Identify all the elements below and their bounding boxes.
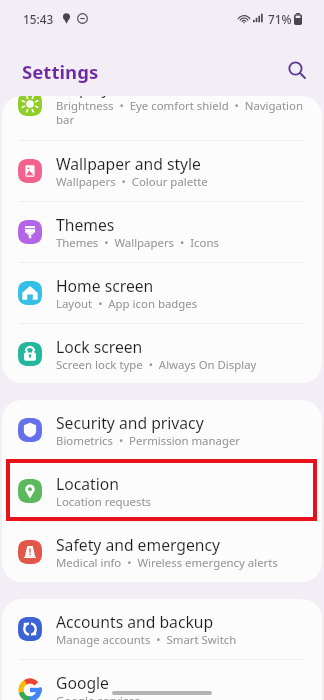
- staticText: Manage accounts • Smart Switch: [56, 632, 237, 648]
- staticText: Google: [56, 672, 109, 693]
- staticText: Display: [56, 96, 110, 98]
- staticText: Layout • App icon badges: [56, 296, 198, 312]
- staticText: Location requests: [56, 494, 152, 510]
- staticText: Lock screen: [56, 336, 143, 357]
- button[interactable]: Lock screen: [2, 324, 322, 383]
- staticText: Screen lock type • Always On Display: [56, 357, 257, 373]
- staticText: Biometrics • Permission manager: [56, 433, 241, 449]
- staticText: Themes • Wallpapers • Icons: [56, 235, 219, 251]
- button[interactable]: Display: [2, 96, 322, 141]
- staticText: Wallpapers • Colour palette: [56, 174, 208, 190]
- staticText: Security and privacy: [56, 412, 204, 433]
- staticText: Brightness • Eye comfort shield • Naviga…: [56, 98, 310, 127]
- staticText: Themes: [56, 214, 115, 235]
- button[interactable]: Search: [282, 55, 312, 85]
- staticText: Medical info • Wireless emergency alerts: [56, 555, 278, 571]
- staticText: Location: [56, 473, 119, 494]
- staticText: Safety and emergency: [56, 534, 221, 555]
- staticText: Accounts and backup: [56, 611, 214, 632]
- button[interactable]: Themes: [2, 202, 322, 263]
- staticText: 15:43: [23, 11, 54, 27]
- staticText: Wallpaper and style: [56, 153, 201, 174]
- staticText: Home screen: [56, 275, 154, 296]
- button[interactable]: Accounts and backup: [2, 599, 322, 660]
- staticText: Google services: [56, 693, 141, 700]
- button[interactable]: Home screen: [2, 263, 322, 324]
- button[interactable]: Safety and emergency: [2, 522, 322, 582]
- button[interactable]: Wallpaper and style: [2, 141, 322, 202]
- button[interactable]: Location: [2, 461, 322, 522]
- staticText: 71%: [268, 11, 292, 27]
- button[interactable]: Google: [2, 660, 322, 700]
- staticText: Settings: [22, 59, 99, 84]
- button[interactable]: Security and privacy: [2, 400, 322, 461]
